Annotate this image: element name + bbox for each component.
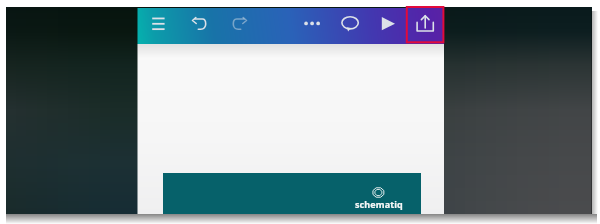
staticText: schematiq (355, 198, 403, 210)
